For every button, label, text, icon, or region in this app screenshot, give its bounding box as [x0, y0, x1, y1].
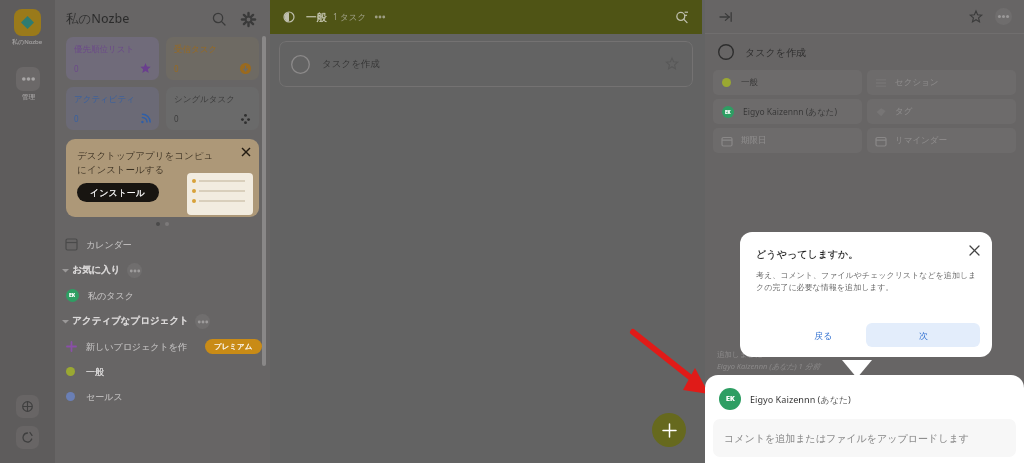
button[interactable]: Search	[208, 8, 230, 30]
staticText: 新しいプロジェクトを作成...	[86, 341, 201, 352]
staticText: アクティブなプロジェクト	[72, 315, 189, 327]
button[interactable]: 戻る	[788, 324, 859, 347]
button[interactable]: More	[195, 314, 210, 329]
staticText: コメントを追加またはファイルをアップロードします	[724, 432, 969, 445]
staticText: EK	[725, 109, 731, 115]
button[interactable]: Globe	[16, 395, 39, 418]
staticText: にインストールする	[77, 164, 165, 176]
button[interactable]: コメントを追加またはファイルをアップロードします	[713, 419, 1016, 457]
button[interactable]: お気に入り	[55, 257, 270, 283]
button[interactable]: Favorite	[663, 55, 681, 73]
staticText: Eigyo Kaizennn (あなた)	[743, 106, 838, 118]
staticText: 戻る	[814, 330, 833, 341]
button[interactable]: Settings	[237, 8, 259, 30]
staticText: 1 タスク	[333, 11, 367, 23]
staticText: Eigyo Kaizennn (あなた)	[750, 393, 851, 405]
button[interactable]: 優先順位リスト	[66, 37, 159, 80]
staticText: カレンダー	[86, 239, 132, 250]
staticText: 追加しました	[717, 350, 763, 359]
button[interactable]: 一般	[55, 359, 270, 384]
staticText: EK	[69, 292, 76, 299]
staticText: タスクを作成	[745, 46, 806, 59]
staticText: タグ	[895, 106, 913, 117]
staticText: シングルタスク	[174, 94, 235, 105]
staticText: セールス	[86, 391, 123, 402]
staticText: 考え、コメント、ファイルやチェックリストなどを追加します。タス	[756, 270, 978, 280]
button[interactable]: Add task	[652, 413, 686, 447]
button[interactable]: More	[995, 8, 1012, 25]
staticText: 私のタスク	[88, 290, 134, 301]
button[interactable]: More options	[373, 10, 387, 24]
staticText: 期限日	[741, 135, 767, 146]
staticText: 一般	[306, 11, 327, 24]
staticText: 私のNozbe	[66, 10, 130, 27]
button[interactable]: 次	[866, 323, 980, 347]
button[interactable]: セールス	[55, 384, 270, 409]
staticText: タスクを作成	[322, 58, 380, 70]
button[interactable]: 管理	[14, 65, 42, 103]
button[interactable]: タスクを作成	[705, 34, 1024, 70]
button[interactable]: リマインダー	[867, 128, 1016, 153]
staticText: セクション	[895, 77, 939, 88]
button[interactable]: プレミアム	[205, 339, 262, 354]
staticText: プレミアム	[214, 342, 253, 351]
staticText: 0	[74, 63, 79, 74]
staticText: 0	[174, 113, 179, 124]
button[interactable]: デスクトップアプリをコンピューター	[66, 139, 259, 217]
staticText: アクティビティ	[74, 94, 135, 105]
staticText: クの完了に必要な情報を追加します。	[756, 282, 894, 292]
button[interactable]: Sync	[16, 426, 39, 449]
button[interactable]: Close	[239, 145, 253, 159]
button[interactable]: 受信タスク	[166, 37, 259, 80]
staticText: どうやってしますか。	[756, 248, 859, 261]
staticText: お気に入り	[72, 264, 121, 276]
staticText: 一般	[741, 77, 758, 88]
button[interactable]: Collapse	[717, 8, 735, 26]
button[interactable]: More	[127, 263, 142, 278]
button[interactable]: シングルタスク	[166, 87, 259, 130]
staticText: 受信タスク	[174, 44, 218, 55]
staticText: 0	[74, 113, 79, 124]
button[interactable]: 新しいプロジェクトを作成...	[55, 334, 270, 359]
button[interactable]: EK	[55, 283, 270, 308]
staticText: 優先順位リスト	[74, 44, 135, 55]
button[interactable]: Toggle sidebar	[281, 9, 297, 25]
button[interactable]: インストール	[77, 183, 159, 202]
button[interactable]: Filter	[673, 8, 691, 26]
staticText: 一般	[86, 366, 104, 377]
staticText: 0	[174, 63, 179, 74]
button[interactable]: EK	[713, 99, 862, 124]
button[interactable]: タスクを作成	[279, 41, 693, 87]
button[interactable]: カレンダー	[55, 232, 270, 257]
button[interactable]: 期限日	[713, 128, 862, 153]
staticText: インストール	[90, 187, 146, 198]
staticText: デスクトップアプリをコンピューター	[77, 150, 219, 162]
button[interactable]: 私のNozbe	[8, 7, 47, 48]
staticText: EK	[726, 394, 735, 404]
staticText: リマインダー	[895, 135, 947, 146]
staticText: 次	[919, 330, 928, 341]
button[interactable]: アクティビティ	[66, 87, 159, 130]
staticText: 管理	[22, 93, 35, 101]
button[interactable]: Favorite	[967, 8, 985, 26]
button[interactable]: アクティブなプロジェクト	[55, 308, 270, 334]
staticText: 私のNozbe	[12, 38, 43, 46]
button[interactable]: 一般	[713, 70, 862, 95]
staticText: Eigyo Kaizennn (あなた) 1 分前	[717, 361, 820, 371]
button[interactable]: Close	[966, 242, 982, 258]
